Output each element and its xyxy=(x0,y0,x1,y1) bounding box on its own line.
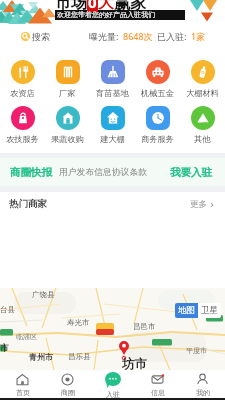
staticText: 坊市 xyxy=(122,356,147,372)
staticText: 机械五金 xyxy=(141,88,174,98)
staticText: 昌邑市 xyxy=(133,322,156,331)
staticText: 用户发布信息协议条款 xyxy=(59,167,147,178)
button[interactable]: 首页 xyxy=(0,370,45,400)
staticText: 卫星 xyxy=(201,305,218,316)
staticText: 曝光量: xyxy=(89,30,119,42)
button[interactable]: 农技服务 xyxy=(0,106,45,144)
button[interactable]: 商务服务 xyxy=(135,106,180,144)
button[interactable]: 入驻 xyxy=(90,370,135,400)
button[interactable]: 商圈 xyxy=(45,370,90,400)
staticText: 广饶县 xyxy=(32,290,55,299)
staticText: 8648次 xyxy=(123,30,153,42)
staticText: 赢家 xyxy=(114,0,146,13)
staticText: 其他 xyxy=(194,134,211,144)
staticText: 临淄区 xyxy=(16,332,37,341)
button[interactable]: 其他 xyxy=(180,106,225,144)
button[interactable]: 更多 xyxy=(188,199,217,210)
staticText: 大 xyxy=(98,0,114,13)
staticText: 已入驻: xyxy=(157,30,187,42)
staticText: 育苗基地 xyxy=(96,88,129,98)
staticText: 商务服务 xyxy=(141,134,174,144)
button[interactable]: 搜索 xyxy=(21,31,50,42)
staticText: 0 xyxy=(88,0,97,12)
staticText: 市 xyxy=(0,342,9,353)
staticText: 果蔬收购 xyxy=(51,134,84,144)
staticText: 地图 xyxy=(178,305,195,316)
button[interactable]: 建大棚 xyxy=(90,106,135,144)
staticText: 信息 xyxy=(151,388,165,397)
button[interactable]: 地图 xyxy=(175,303,198,318)
button[interactable]: 厂家 xyxy=(45,60,90,98)
staticText: 农技服务 xyxy=(6,134,39,144)
button[interactable]: 卫星 xyxy=(198,303,221,318)
button[interactable]: 我要入驻 xyxy=(168,166,214,179)
button[interactable]: 我的 xyxy=(180,370,225,400)
staticText: 青州市 xyxy=(29,352,53,362)
staticText: 平度市 xyxy=(186,346,207,355)
staticText: 更多 xyxy=(190,199,207,210)
staticText: 首页 xyxy=(16,388,30,397)
staticText: 商圈 xyxy=(61,388,75,397)
staticText: 大棚材料 xyxy=(186,88,219,98)
button[interactable]: 机械五金 xyxy=(135,60,180,98)
button[interactable]: 育苗基地 xyxy=(90,60,135,98)
staticText: 厂家 xyxy=(59,88,76,98)
staticText: 1家 xyxy=(191,30,206,42)
staticText: 台县 xyxy=(0,305,15,314)
staticText: 市场 xyxy=(55,0,87,13)
button[interactable]: 信息 xyxy=(135,370,180,400)
staticText: 建大棚 xyxy=(100,134,125,144)
button[interactable]: Promotion banner xyxy=(0,0,225,24)
staticText: 搜索 xyxy=(32,31,50,42)
staticText: 热门商家 xyxy=(9,198,47,210)
staticText: 寿光市 xyxy=(67,318,90,327)
staticText: 昌乐县 xyxy=(68,352,91,361)
staticText: 商圈快报 xyxy=(10,166,52,179)
button[interactable]: 农资店 xyxy=(0,60,45,98)
button[interactable]: 果蔬收购 xyxy=(45,106,90,144)
staticText: 欢迎您带着您的好产品入驻我们 xyxy=(57,10,155,19)
staticText: 我要入驻 xyxy=(170,166,212,179)
staticText: 我的 xyxy=(196,388,210,397)
button[interactable]: 大棚材料 xyxy=(180,60,225,98)
staticText: 入驻 xyxy=(106,390,120,399)
staticText: 农资店 xyxy=(10,88,35,98)
